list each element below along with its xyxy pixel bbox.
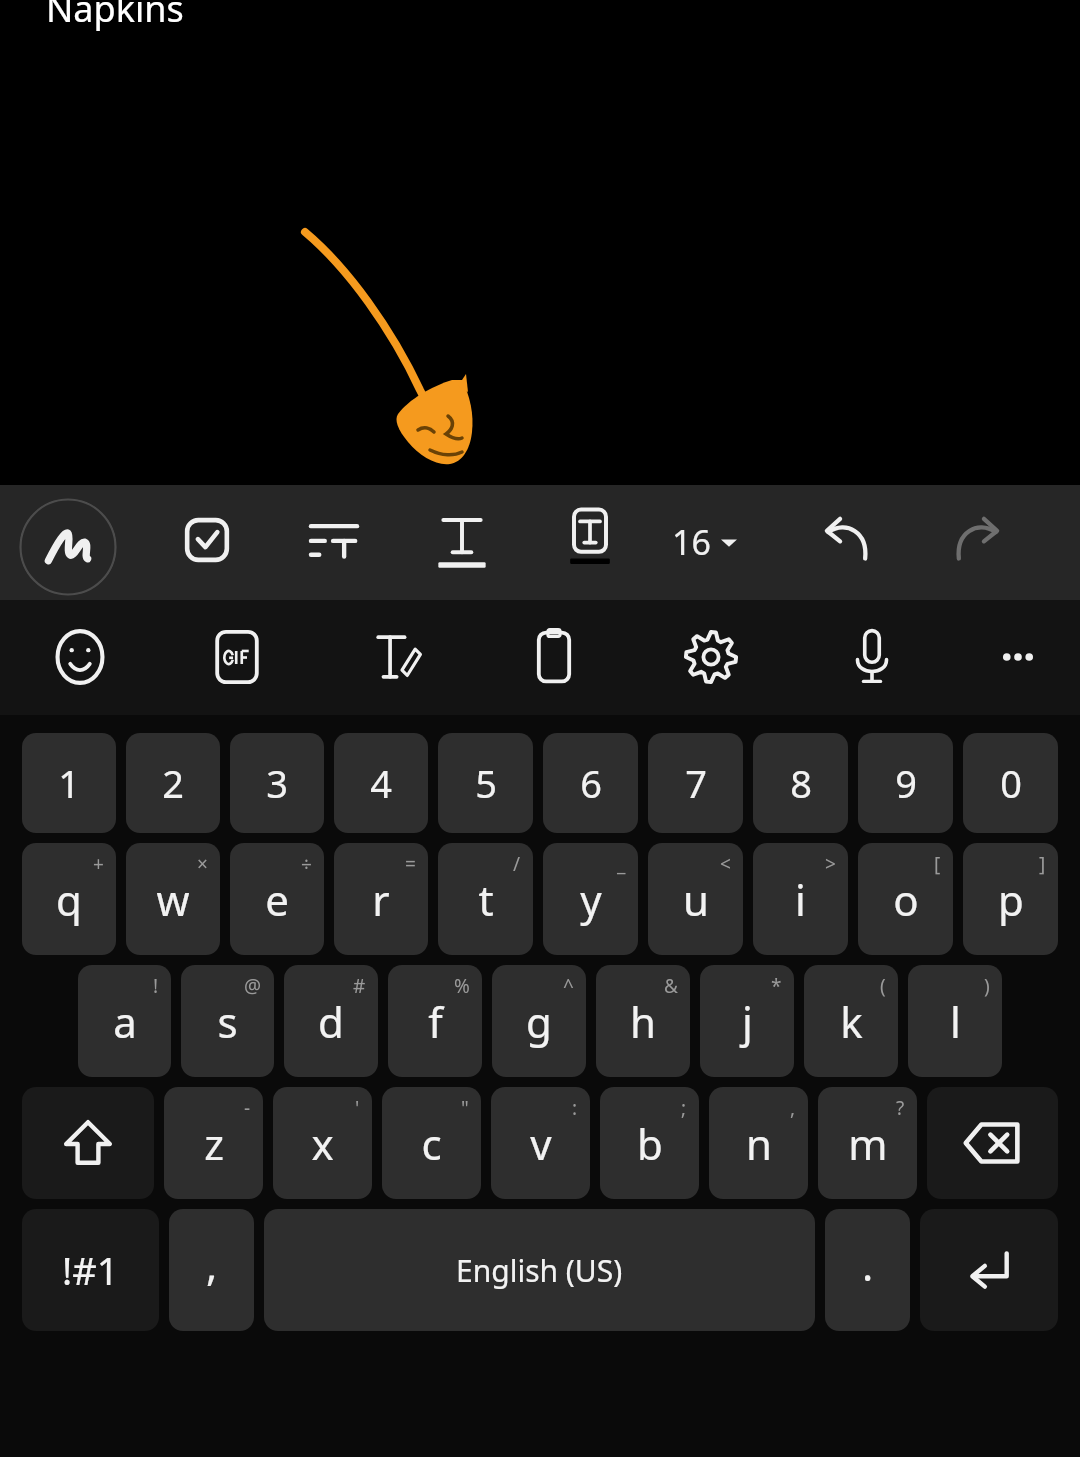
- button[interactable]: d: [284, 965, 378, 1077]
- button[interactable]: Backspace: [927, 1087, 1058, 1199]
- button[interactable]: f: [388, 965, 482, 1077]
- button[interactable]: 1: [22, 733, 116, 833]
- staticText: s: [217, 993, 238, 1050]
- staticText: 2: [162, 757, 184, 809]
- staticText: ): [984, 973, 990, 999]
- button[interactable]: Clipboard: [521, 620, 587, 694]
- staticText: :: [572, 1095, 578, 1121]
- button[interactable]: 5: [438, 733, 533, 833]
- staticText: [: [934, 851, 941, 877]
- button[interactable]: 8: [753, 733, 848, 833]
- button[interactable]: Emoji: [47, 620, 113, 694]
- button[interactable]: m: [818, 1087, 917, 1199]
- button[interactable]: y: [543, 843, 638, 955]
- staticText: .: [862, 1236, 874, 1293]
- staticText: @: [244, 973, 262, 999]
- button[interactable]: 16: [672, 509, 739, 575]
- button[interactable]: j: [700, 965, 794, 1077]
- button[interactable]: .: [825, 1209, 910, 1331]
- staticText: ]: [1039, 851, 1046, 877]
- button[interactable]: s: [181, 965, 274, 1077]
- staticText: p: [998, 871, 1024, 928]
- button[interactable]: a: [78, 965, 171, 1077]
- staticText: q: [56, 871, 82, 928]
- button[interactable]: v: [491, 1087, 590, 1199]
- button[interactable]: Settings: [678, 620, 744, 694]
- staticText: ,: [206, 1236, 218, 1293]
- button[interactable]: Redo: [943, 505, 1009, 575]
- staticText: f: [428, 993, 443, 1050]
- staticText: =: [405, 851, 416, 877]
- button[interactable]: q: [22, 843, 116, 955]
- staticText: <: [720, 851, 731, 877]
- button[interactable]: Shift: [22, 1087, 154, 1199]
- button[interactable]: 2: [126, 733, 220, 833]
- button[interactable]: k: [804, 965, 898, 1077]
- staticText: h: [630, 993, 656, 1050]
- staticText: l: [950, 993, 961, 1050]
- button[interactable]: z: [164, 1087, 263, 1199]
- staticText: _: [617, 851, 626, 877]
- button[interactable]: More options: [985, 620, 1051, 694]
- staticText: -: [244, 1095, 251, 1121]
- button[interactable]: ,: [169, 1209, 254, 1331]
- button[interactable]: Text highlight: [558, 505, 622, 575]
- button[interactable]: Voice input: [839, 620, 905, 694]
- staticText: /: [513, 851, 521, 877]
- button[interactable]: u: [648, 843, 743, 955]
- staticText: m: [848, 1115, 888, 1172]
- button[interactable]: r: [334, 843, 428, 955]
- button[interactable]: 6: [543, 733, 638, 833]
- button[interactable]: English (US): [264, 1209, 815, 1331]
- staticText: c: [421, 1115, 442, 1172]
- staticText: (: [880, 973, 886, 999]
- button[interactable]: p: [963, 843, 1058, 955]
- button[interactable]: w: [126, 843, 220, 955]
- button[interactable]: e: [230, 843, 324, 955]
- button[interactable]: c: [382, 1087, 481, 1199]
- button[interactable]: t: [438, 843, 533, 955]
- button[interactable]: Paragraph style: [302, 505, 366, 575]
- button[interactable]: x: [273, 1087, 372, 1199]
- staticText: English (US): [456, 1250, 623, 1291]
- staticText: 9: [895, 757, 917, 809]
- staticText: ": [461, 1095, 469, 1121]
- button[interactable]: Undo: [815, 505, 881, 575]
- staticText: j: [742, 993, 753, 1050]
- staticText: e: [265, 871, 289, 928]
- staticText: z: [204, 1115, 224, 1172]
- staticText: 0: [1000, 757, 1022, 809]
- staticText: t: [478, 871, 494, 928]
- staticText: 6: [580, 757, 602, 809]
- button[interactable]: 3: [230, 733, 324, 833]
- button[interactable]: Pen tool: [19, 498, 117, 596]
- staticText: !#1: [62, 1244, 119, 1296]
- staticText: u: [683, 871, 709, 928]
- button[interactable]: Checklist: [175, 505, 239, 575]
- button[interactable]: i: [753, 843, 848, 955]
- button[interactable]: 4: [334, 733, 428, 833]
- button[interactable]: h: [596, 965, 690, 1077]
- button[interactable]: GIF: [204, 620, 270, 694]
- button[interactable]: 9: [858, 733, 953, 833]
- button[interactable]: Enter: [920, 1209, 1058, 1331]
- button[interactable]: l: [908, 965, 1002, 1077]
- staticText: 7: [685, 757, 707, 809]
- button[interactable]: o: [858, 843, 953, 955]
- staticText: +: [93, 851, 104, 877]
- button[interactable]: g: [492, 965, 586, 1077]
- button[interactable]: b: [600, 1087, 699, 1199]
- staticText: k: [840, 993, 863, 1050]
- staticText: o: [893, 871, 919, 928]
- button[interactable]: !#1: [22, 1209, 159, 1331]
- button[interactable]: n: [709, 1087, 808, 1199]
- button[interactable]: Text color: [430, 505, 494, 575]
- staticText: x: [311, 1115, 334, 1172]
- button[interactable]: Handwriting: [365, 620, 431, 694]
- button[interactable]: 0: [963, 733, 1058, 833]
- staticText: ;: [681, 1095, 687, 1121]
- staticText: a: [113, 993, 137, 1050]
- staticText: !: [153, 973, 159, 999]
- button[interactable]: 7: [648, 733, 743, 833]
- staticText: ×: [197, 851, 208, 877]
